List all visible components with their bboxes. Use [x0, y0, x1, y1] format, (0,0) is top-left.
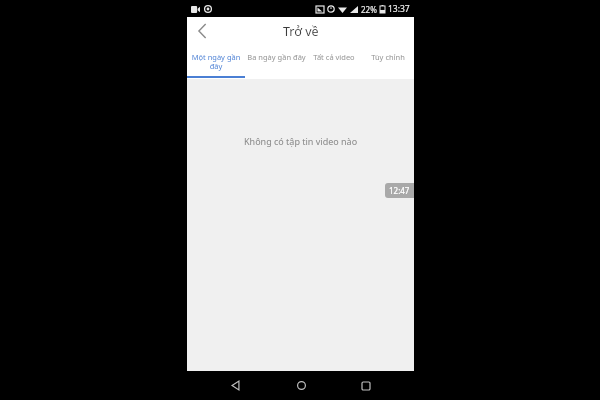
button[interactable]: Back: [187, 17, 217, 45]
staticText: 13:37: [388, 3, 410, 15]
staticText: Tùy chỉnh: [371, 52, 405, 62]
staticText: 12:47: [389, 185, 410, 196]
button[interactable]: Home: [283, 371, 319, 400]
button[interactable]: Recent apps: [348, 371, 384, 400]
staticText: 22%: [361, 4, 377, 15]
button[interactable]: Một ngày gần đây: [187, 45, 245, 79]
staticText: Trở về: [283, 23, 319, 40]
staticText: Một ngày gần đây: [190, 52, 242, 71]
staticText: Không có tập tin video nào: [244, 135, 358, 147]
button[interactable]: Tất cả video: [307, 45, 361, 79]
staticText: Ba ngày gần đây: [247, 52, 306, 62]
button[interactable]: Back: [217, 371, 253, 400]
button[interactable]: Ba ngày gần đây: [245, 45, 307, 79]
button[interactable]: Tùy chỉnh: [361, 45, 414, 79]
staticText: Tất cả video: [313, 52, 355, 62]
